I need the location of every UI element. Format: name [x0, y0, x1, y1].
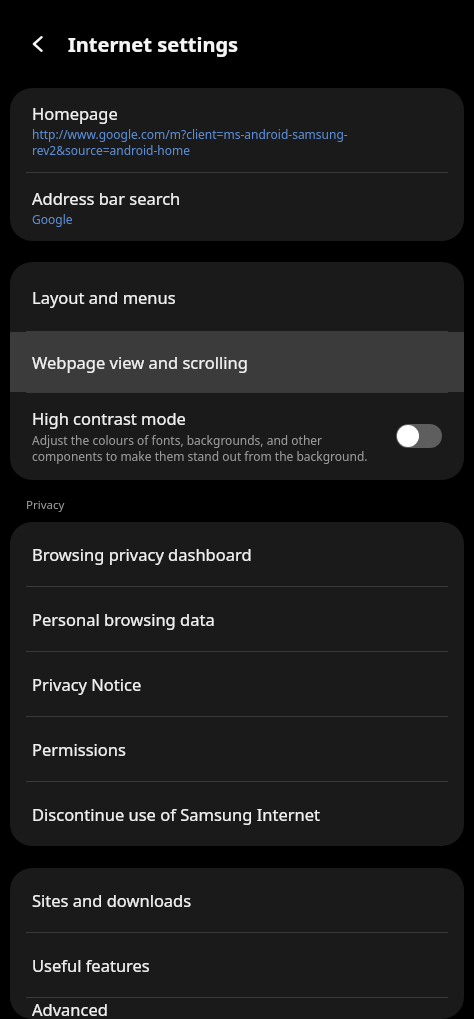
button[interactable]: Back [20, 26, 56, 62]
button[interactable]: High contrast mode toggle [396, 424, 442, 448]
staticText: Google [32, 211, 73, 227]
button[interactable]: Sites and downloads [10, 868, 464, 932]
button[interactable]: Address bar search [10, 173, 464, 241]
staticText: Webpage view and scrolling [32, 351, 248, 373]
button[interactable]: Webpage view and scrolling [10, 332, 464, 392]
staticText: Personal browsing data [32, 608, 215, 630]
button[interactable]: Useful features [10, 933, 464, 997]
staticText: Sites and downloads [32, 889, 192, 911]
button[interactable]: Privacy Notice [10, 652, 464, 716]
button[interactable]: Browsing privacy dashboard [10, 522, 464, 586]
staticText: Privacy Notice [32, 673, 142, 695]
button[interactable]: Homepage [10, 88, 464, 172]
staticText: Homepage [32, 102, 118, 124]
staticText: Advanced [32, 998, 108, 1019]
staticText: Layout and menus [32, 286, 176, 308]
button[interactable]: Permissions [10, 717, 464, 781]
button[interactable]: Discontinue use of Samsung Internet [10, 782, 464, 846]
staticText: Browsing privacy dashboard [32, 543, 252, 565]
staticText: Adjust the colours of fonts, backgrounds… [32, 432, 380, 464]
staticText: Privacy [26, 497, 65, 513]
staticText: Useful features [32, 954, 150, 976]
staticText: Internet settings [68, 31, 239, 58]
button[interactable]: Advanced [10, 998, 464, 1019]
staticText: Discontinue use of Samsung Internet [32, 803, 320, 825]
staticText: Permissions [32, 738, 126, 760]
button[interactable]: Layout and menus [10, 262, 464, 331]
staticText: Address bar search [32, 187, 181, 209]
staticText: http://www.google.com/m?client=ms-androi… [32, 126, 442, 158]
staticText: High contrast mode [32, 407, 186, 429]
button[interactable]: Personal browsing data [10, 587, 464, 651]
button[interactable]: High contrast mode [10, 393, 464, 480]
